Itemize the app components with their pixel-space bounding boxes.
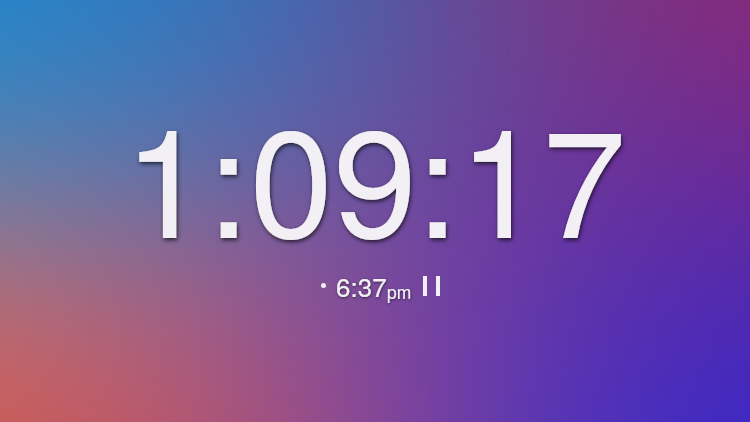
button[interactable]: Pause [420,274,442,298]
staticText: pm [387,279,412,304]
staticText: 6:37 [336,267,387,304]
staticText: 1:09:17 [124,65,627,281]
